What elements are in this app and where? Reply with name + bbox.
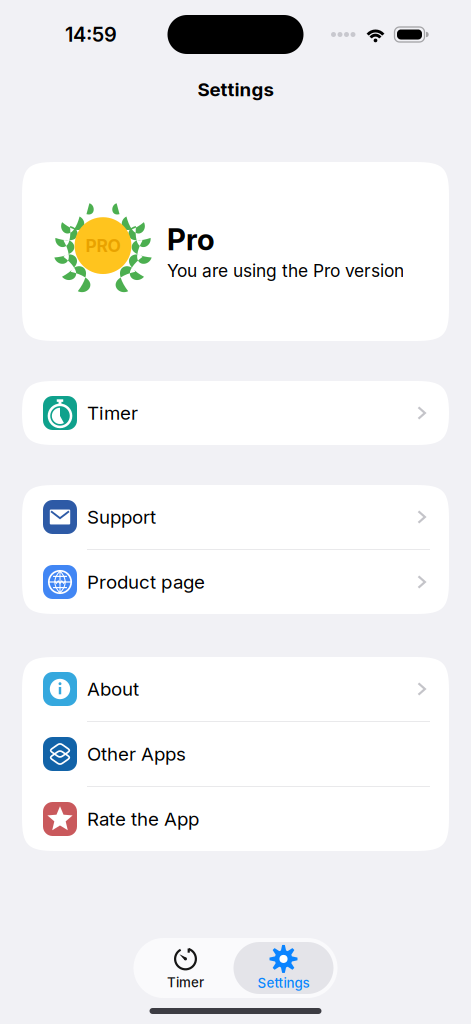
button[interactable]: Timer: [137, 942, 233, 994]
staticText: 14:59: [65, 22, 117, 47]
button[interactable]: Timer: [22, 381, 449, 445]
staticText: Rate the App: [87, 808, 199, 830]
staticText: Product page: [87, 571, 205, 593]
button[interactable]: Support: [22, 485, 449, 549]
button[interactable]: Other Apps: [22, 722, 449, 786]
staticText: Timer: [87, 402, 138, 424]
staticText: PRO: [85, 235, 120, 256]
button[interactable]: Rate the App: [22, 787, 449, 851]
button[interactable]: Product page: [22, 550, 449, 614]
staticText: Settings: [257, 975, 309, 991]
staticText: Other Apps: [87, 743, 186, 765]
button[interactable]: About: [22, 657, 449, 721]
staticText: Pro: [167, 222, 215, 257]
staticText: Timer: [167, 974, 204, 990]
staticText: You are using the Pro version: [167, 260, 404, 281]
staticText: About: [87, 678, 139, 700]
button[interactable]: Settings: [233, 942, 333, 994]
staticText: Support: [87, 506, 156, 528]
staticText: Settings: [197, 78, 273, 101]
